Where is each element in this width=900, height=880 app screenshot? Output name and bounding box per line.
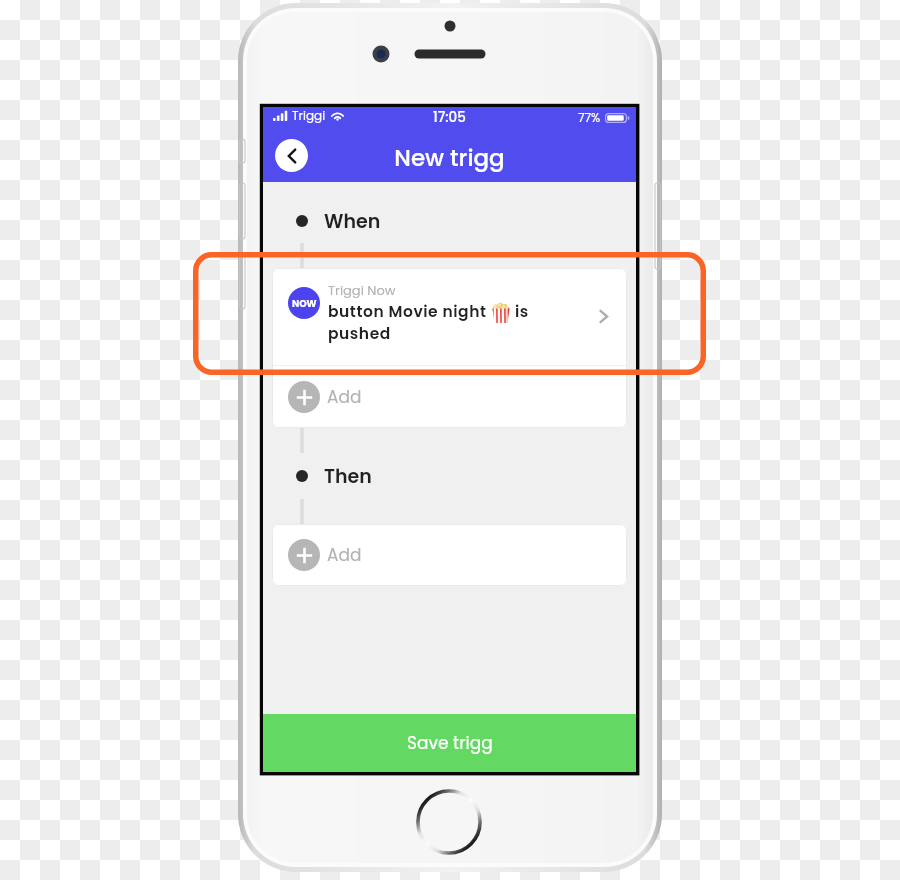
staticText: When bbox=[324, 208, 381, 234]
staticText: Save trigg bbox=[407, 731, 493, 755]
staticText: Triggi bbox=[292, 107, 326, 124]
button[interactable]: Add bbox=[272, 366, 627, 428]
staticText: NOW bbox=[292, 297, 317, 310]
staticText: Add bbox=[327, 385, 362, 409]
button[interactable]: Back bbox=[275, 139, 308, 172]
staticText: Triggi Now bbox=[328, 281, 396, 299]
staticText: New trigg bbox=[394, 142, 505, 174]
staticText: 17:05 bbox=[433, 108, 466, 127]
button[interactable]: NOW bbox=[272, 268, 627, 365]
staticText: is bbox=[515, 301, 529, 323]
button[interactable]: Save trigg bbox=[263, 714, 636, 772]
staticText: button Movie night bbox=[328, 301, 487, 323]
staticText: Then bbox=[324, 463, 372, 489]
staticText: pushed bbox=[328, 323, 391, 345]
button[interactable]: Add bbox=[272, 524, 627, 586]
staticText: 77% bbox=[578, 109, 601, 126]
staticText: Add bbox=[327, 543, 362, 567]
